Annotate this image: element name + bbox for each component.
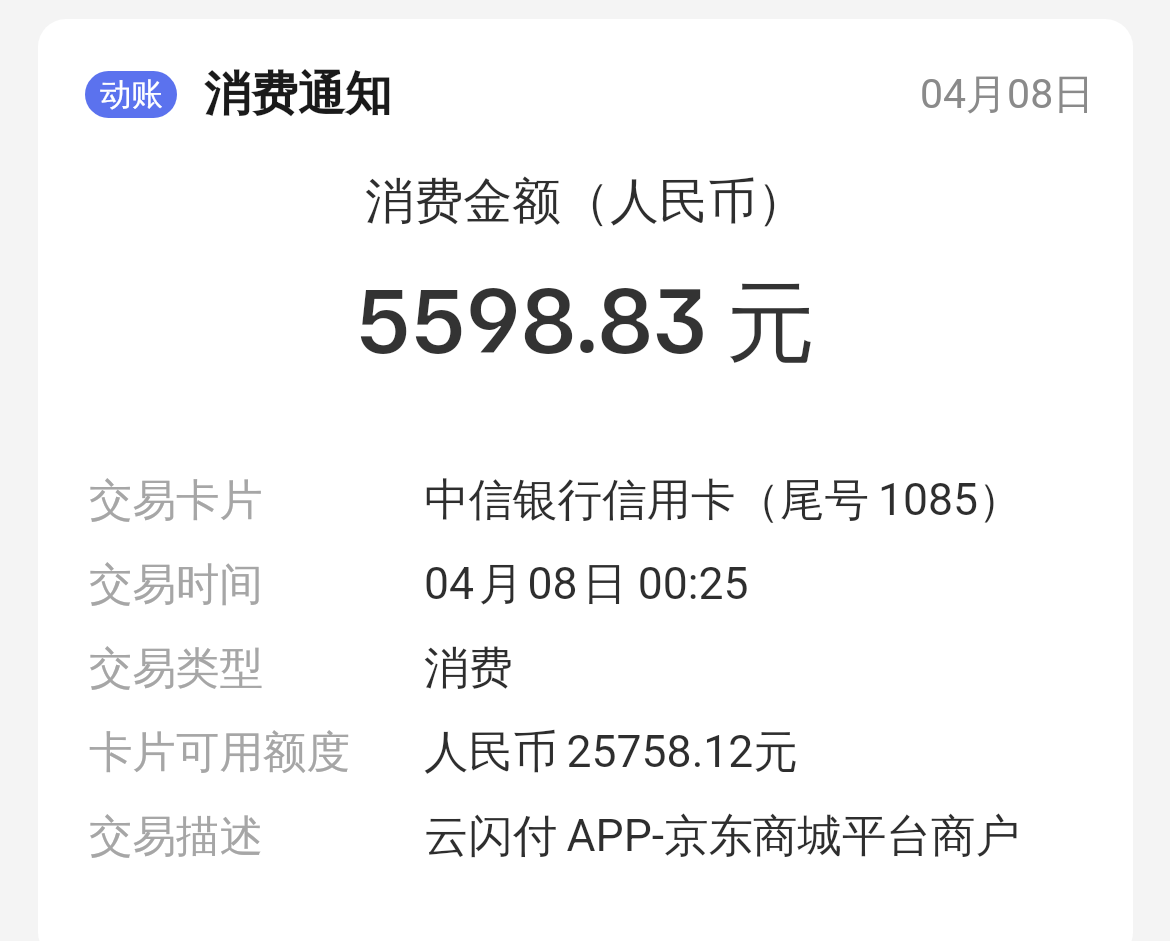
staticText: 交易描述 [89, 809, 263, 864]
staticText: 消费通知 [204, 65, 392, 124]
staticText: 中信银行信用卡（尾号 1085） [424, 472, 1023, 528]
staticText: 消费 [424, 640, 513, 696]
button[interactable]: 交易卡片 [89, 458, 1093, 542]
button[interactable]: 交易时间 [89, 542, 1093, 626]
staticText: 交易时间 [89, 557, 263, 612]
button[interactable]: 动账 [38, 19, 1133, 941]
staticText: 交易卡片 [89, 473, 263, 528]
button[interactable]: 交易描述 [89, 794, 1093, 878]
staticText: 人民币 25758.12元 [424, 724, 798, 780]
staticText: 5598.83 元 [38, 254, 1133, 380]
staticText: 04 月 08 日 00:25 [424, 556, 749, 612]
staticText: 交易类型 [89, 641, 263, 696]
button[interactable]: 交易类型 [89, 626, 1093, 710]
staticText: 消费金额（人民币） [38, 171, 1133, 233]
button[interactable]: 动账 [85, 71, 177, 118]
button[interactable]: 卡片可用额度 [89, 710, 1093, 794]
staticText: 卡片可用额度 [89, 725, 350, 780]
staticText: 动账 [100, 75, 163, 115]
staticText: 04月08日 [920, 69, 1095, 121]
staticText: 云闪付 APP-京东商城平台商户 [424, 808, 1021, 864]
